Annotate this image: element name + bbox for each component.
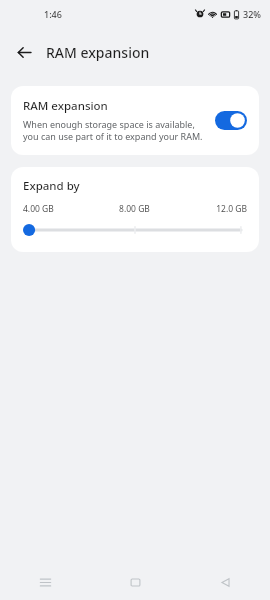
staticText: Expand by [23,178,80,194]
button[interactable]: RAM expansion [11,86,259,155]
staticText: RAM expansion [23,98,108,114]
button[interactable]: RAM expansion toggle [215,111,247,130]
button[interactable]: Home [90,564,180,600]
button[interactable]: Expand by slider [23,222,247,238]
staticText: RAM expansion [46,43,150,62]
staticText: 32% [243,8,261,20]
staticText: 12.0 GB [172,203,247,215]
staticText: When enough storage space is available, … [23,118,205,143]
staticText: 4.00 GB [23,203,97,215]
staticText: 1:46 [44,8,62,20]
button[interactable]: Back [180,564,270,600]
button[interactable]: Back [8,36,40,68]
staticText: 8.00 GB [97,203,172,215]
button[interactable]: Recents [0,564,90,600]
